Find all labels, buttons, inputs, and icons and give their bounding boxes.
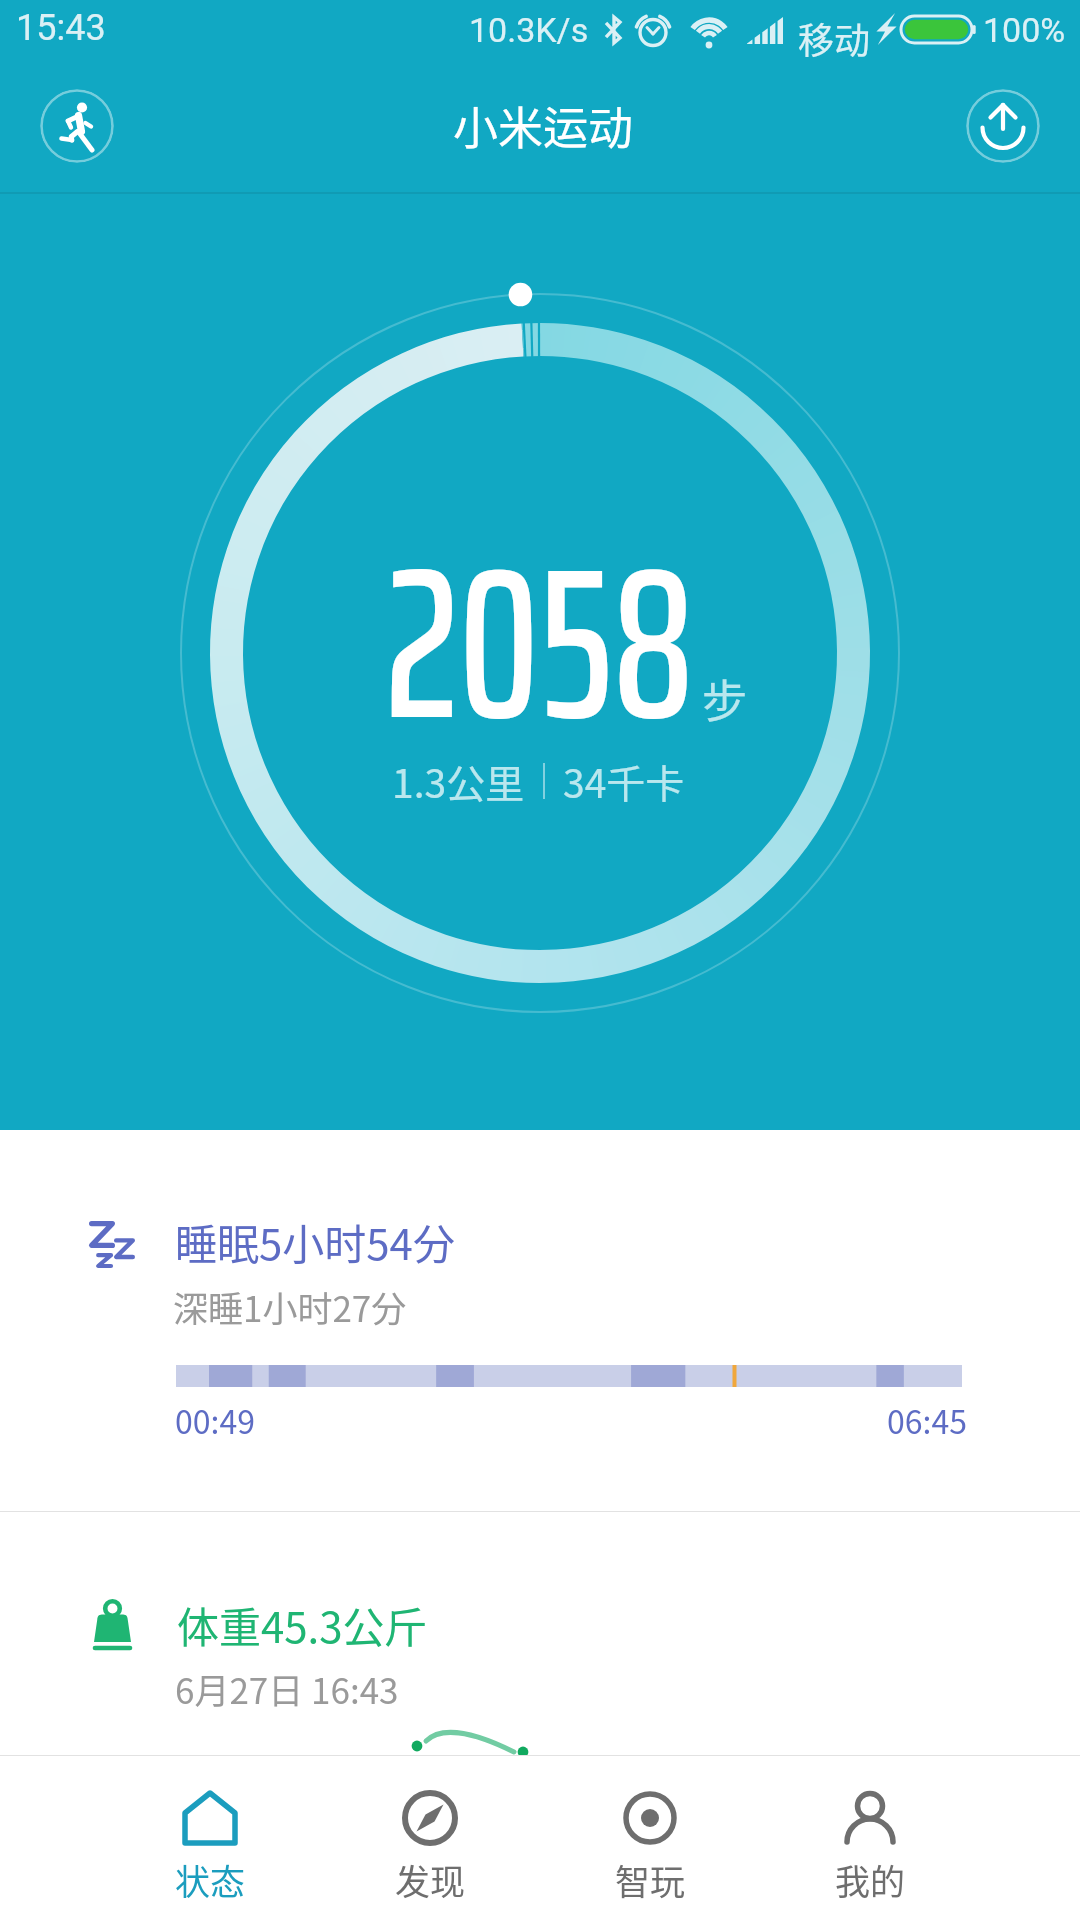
staticText: 6月27日 16:43: [175, 1663, 399, 1714]
staticText: 00:49: [175, 1397, 255, 1443]
staticText: 状态: [175, 1854, 246, 1905]
staticText: 10.3K/s: [469, 10, 589, 50]
button[interactable]: Share: [966, 89, 1040, 163]
staticText: 34千卡: [563, 753, 685, 809]
staticText: 移动: [798, 12, 871, 64]
staticText: 100%: [983, 10, 1066, 50]
staticText: 发现: [395, 1854, 466, 1905]
button[interactable]: 状态: [100, 1756, 320, 1920]
staticText: 睡眠5小时54分: [175, 1211, 455, 1272]
staticText: 深睡1小时27分: [173, 1281, 407, 1332]
button[interactable]: Start workout: [40, 89, 114, 163]
staticText: 小米运动: [453, 93, 634, 158]
staticText: 步: [702, 666, 748, 731]
button[interactable]: 发现: [320, 1756, 540, 1920]
button[interactable]: 睡眠5小时54分: [0, 1130, 1080, 1512]
staticText: 我的: [835, 1854, 906, 1905]
button[interactable]: 体重45.3公斤: [0, 1513, 1080, 1755]
staticText: 15:43: [16, 7, 106, 49]
staticText: 06:45: [887, 1397, 967, 1443]
button[interactable]: 智玩: [540, 1756, 760, 1920]
staticText: 体重45.3公斤: [177, 1594, 427, 1655]
staticText: 2058: [385, 476, 694, 810]
button[interactable]: 我的: [760, 1756, 980, 1920]
staticText: 1.3公里: [392, 753, 525, 809]
staticText: 智玩: [615, 1854, 686, 1905]
